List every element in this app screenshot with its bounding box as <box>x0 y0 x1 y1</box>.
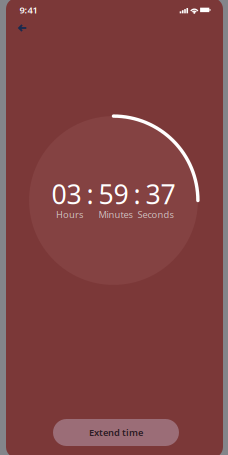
staticText: 9:41 <box>19 4 37 16</box>
staticText: 37 <box>145 176 175 212</box>
staticText: Extend time <box>89 426 143 439</box>
staticText: : <box>86 176 93 212</box>
staticText: 59 <box>98 176 128 212</box>
staticText: Seconds <box>137 208 173 221</box>
button[interactable]: Extend time <box>53 419 179 446</box>
staticText: 03 <box>51 176 81 212</box>
staticText: Minutes <box>98 208 132 221</box>
button[interactable]: Back <box>8 15 36 41</box>
staticText: Hours <box>56 208 83 221</box>
staticText: : <box>133 176 140 212</box>
